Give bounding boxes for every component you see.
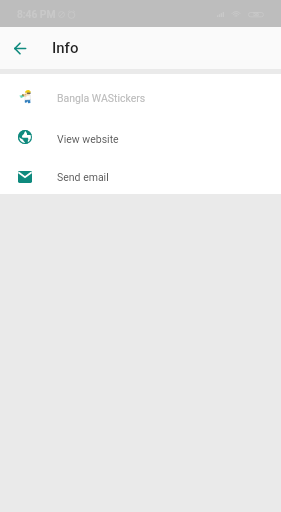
staticText: Info — [52, 39, 79, 57]
staticText: Send email — [57, 171, 109, 183]
button[interactable]: View website — [0, 118, 281, 159]
staticText: Bangla WAStickers — [57, 92, 146, 104]
button[interactable]: Bangla WAStickers — [0, 77, 281, 118]
button[interactable]: Send email — [0, 159, 281, 194]
staticText: View website — [57, 133, 119, 145]
staticText: 8:46 PM — [17, 8, 56, 20]
button[interactable]: Back — [7, 35, 33, 61]
